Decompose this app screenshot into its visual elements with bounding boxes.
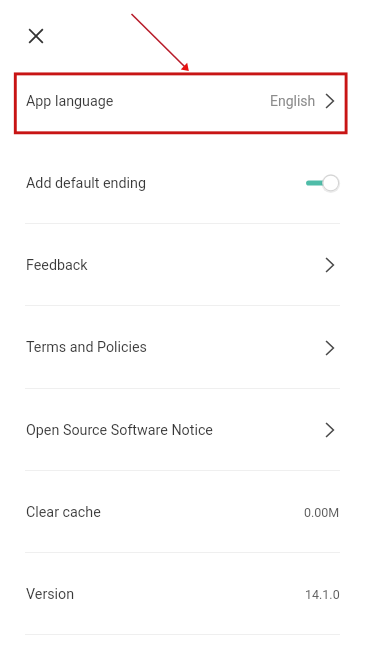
staticText: 14.1.0 [305,587,340,602]
button[interactable]: Close [22,22,50,50]
staticText: Open Source Software Notice [26,422,213,439]
button[interactable]: App language [0,60,365,142]
staticText: App language [26,93,114,110]
button[interactable]: Terms and Policies [0,306,365,389]
staticText: Terms and Policies [26,339,147,356]
staticText: Feedback [26,257,88,274]
staticText: Clear cache [26,504,101,521]
button[interactable]: Open Source Software Notice [0,389,365,471]
button[interactable]: Version [0,553,365,635]
button[interactable]: Add default ending [0,142,365,224]
staticText: Version [26,586,75,603]
staticText: English [270,93,316,109]
button[interactable]: Clear cache [0,471,365,553]
staticText: 0.00M [304,505,340,520]
staticText: Add default ending [26,175,146,192]
button[interactable]: Feedback [0,224,365,306]
